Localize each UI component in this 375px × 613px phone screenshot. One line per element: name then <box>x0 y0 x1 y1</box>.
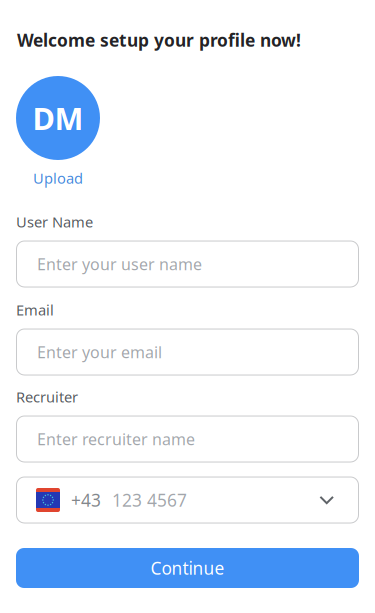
staticText: User Name <box>16 212 93 231</box>
button[interactable]: Upload <box>16 169 100 187</box>
staticText: Continue <box>150 556 224 579</box>
staticText: Welcome setup your profile now! <box>17 28 301 51</box>
staticText: DM <box>32 98 83 138</box>
button[interactable]: Continue <box>16 548 359 588</box>
staticText: Recruiter <box>16 387 78 406</box>
staticText: 123 4567 <box>112 488 187 511</box>
staticText: Enter your user name <box>37 253 202 275</box>
staticText: Upload <box>33 168 83 188</box>
staticText: Email <box>16 300 54 319</box>
staticText: +43 <box>71 488 101 511</box>
staticText: Enter recruiter name <box>37 428 195 450</box>
staticText: Enter your email <box>37 341 162 363</box>
